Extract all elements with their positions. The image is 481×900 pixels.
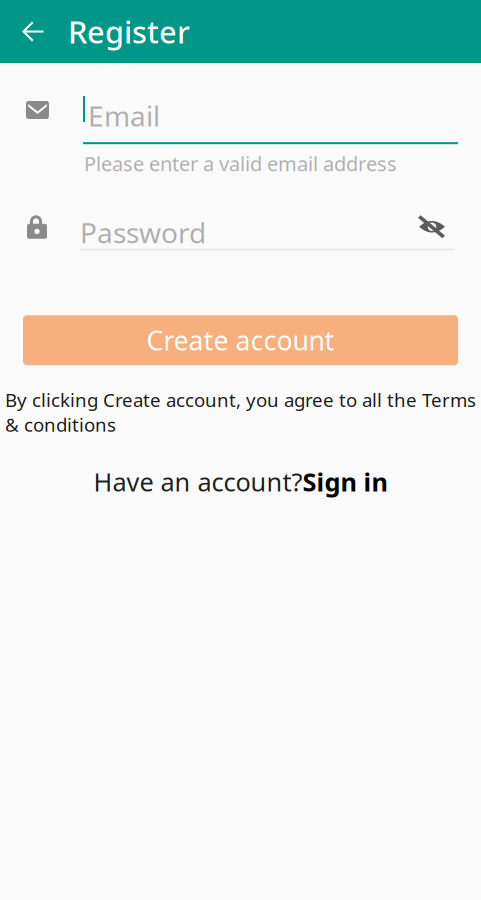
button[interactable]: Create account bbox=[23, 315, 458, 365]
staticText: Email bbox=[88, 97, 160, 134]
staticText: Have an account? bbox=[93, 465, 302, 498]
staticText: Sign in bbox=[302, 465, 387, 498]
button[interactable]: Show password bbox=[412, 213, 452, 241]
staticText: By clicking Create account, you agree to… bbox=[5, 387, 476, 437]
button[interactable]: Back bbox=[10, 0, 56, 63]
staticText: Please enter a valid email address bbox=[84, 150, 397, 177]
button[interactable]: Sign in bbox=[302, 465, 387, 498]
staticText: Register bbox=[68, 11, 190, 52]
staticText: Create account bbox=[146, 322, 334, 358]
staticText: Password bbox=[80, 214, 206, 251]
